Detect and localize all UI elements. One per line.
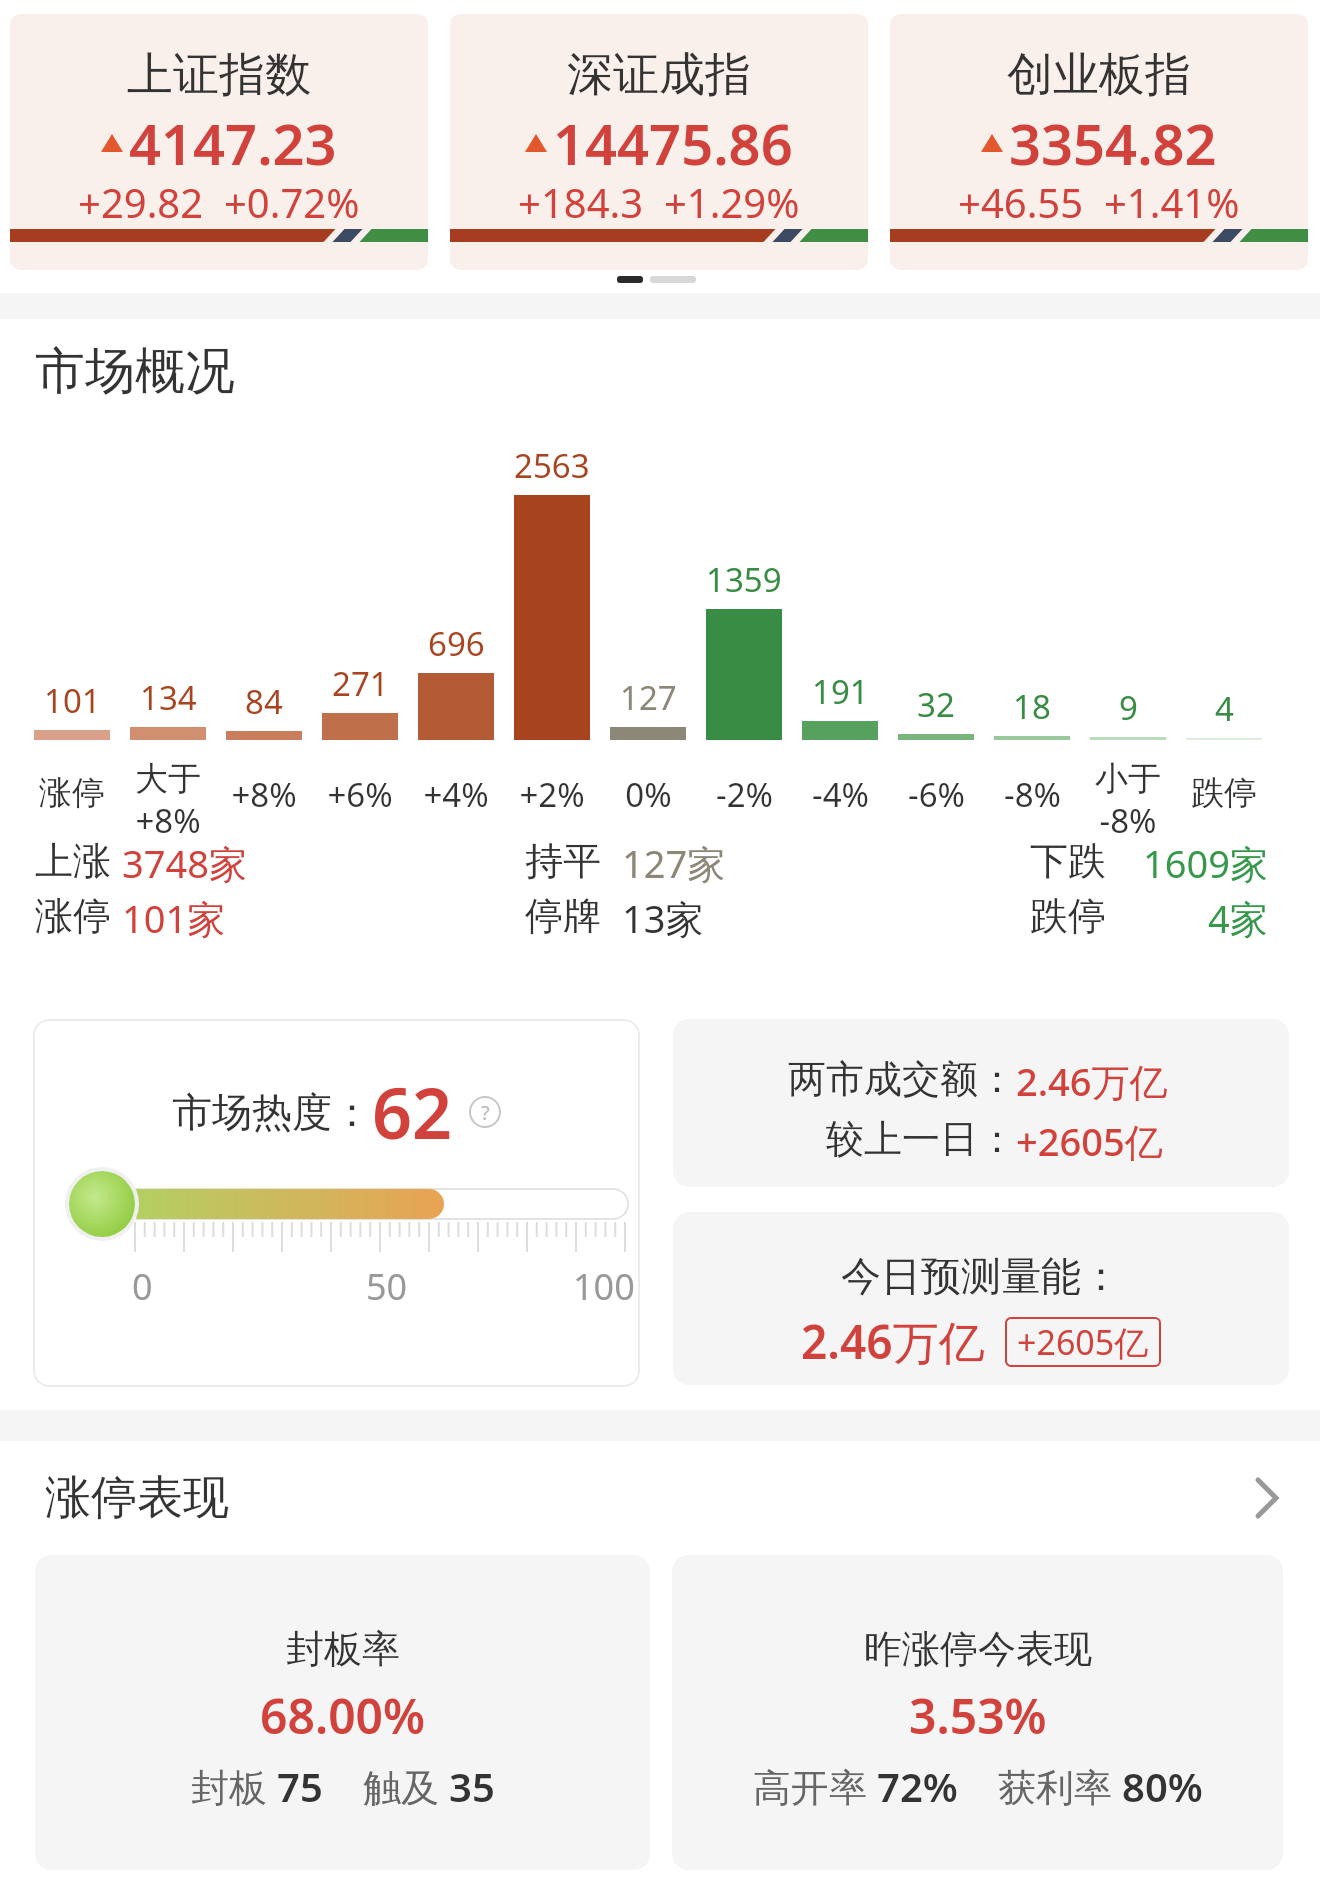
- staticText: 获利率: [998, 1760, 1122, 1812]
- staticText: 3354.82: [1009, 105, 1217, 181]
- staticText: 127家: [622, 837, 726, 889]
- staticText: 较上一日：: [826, 1115, 1016, 1163]
- staticText: 100: [573, 1262, 635, 1311]
- staticText: 封板: [191, 1760, 277, 1812]
- button[interactable]: 昨涨停今表现: [672, 1555, 1283, 1870]
- staticText: 84: [245, 679, 283, 723]
- button[interactable]: 两市成交额：: [673, 1019, 1289, 1187]
- staticText: 101家: [122, 892, 226, 944]
- staticText: 两市成交额：: [788, 1055, 1016, 1103]
- staticText: 68.00%: [260, 1683, 426, 1748]
- staticText: +4%: [423, 772, 489, 817]
- staticText: 涨停: [39, 772, 105, 814]
- staticText: 127: [620, 675, 677, 719]
- button[interactable]: 上证指数: [10, 14, 428, 270]
- staticText: 上证指数: [127, 46, 311, 104]
- staticText: 2563: [514, 443, 590, 487]
- staticText: 32: [917, 682, 955, 726]
- staticText: -2%: [716, 772, 773, 817]
- button[interactable]: 市场热度：: [33, 1019, 640, 1387]
- staticText: +46.55 +1.41%: [958, 175, 1240, 229]
- staticText: 0: [132, 1262, 153, 1311]
- staticText: +2605亿: [1016, 1115, 1163, 1167]
- button[interactable]: 创业板指: [890, 14, 1308, 270]
- staticText: -8%: [1004, 772, 1061, 817]
- button[interactable]: 涨停表现: [0, 1468, 1320, 1528]
- staticText: 3.53%: [909, 1683, 1047, 1748]
- staticText: ?: [481, 1099, 490, 1126]
- staticText: +2605亿: [1017, 1319, 1149, 1365]
- staticText: 市场概况: [35, 340, 235, 403]
- staticText: 1359: [706, 557, 782, 601]
- staticText: 高开率: [753, 1760, 877, 1812]
- staticText: 72%: [877, 1759, 958, 1813]
- staticText: 涨停: [35, 892, 111, 940]
- staticText: +184.3 +1.29%: [518, 175, 800, 229]
- staticText: 50: [366, 1262, 408, 1311]
- staticText: 271: [332, 661, 389, 705]
- staticText: 持平: [525, 837, 601, 885]
- staticText: 停牌: [525, 892, 601, 940]
- staticText: 跌停: [1191, 772, 1257, 814]
- staticText: 触及: [363, 1760, 449, 1812]
- staticText: 1609家: [1143, 837, 1268, 889]
- staticText: 小于 -8%: [1095, 758, 1161, 843]
- staticText: -6%: [908, 772, 965, 817]
- staticText: 市场热度：: [172, 1087, 372, 1137]
- staticText: 创业板指: [1007, 46, 1191, 104]
- staticText: 0%: [625, 772, 672, 817]
- staticText: 下跌: [1030, 837, 1106, 885]
- button[interactable]: 封板率: [35, 1555, 650, 1870]
- staticText: 4家: [1208, 892, 1268, 944]
- staticText: 18: [1013, 684, 1051, 728]
- staticText: 3748家: [122, 837, 247, 889]
- staticText: 101: [44, 678, 101, 722]
- staticText: 35: [449, 1759, 495, 1813]
- staticText: +2%: [519, 772, 585, 817]
- button[interactable]: 深证成指: [450, 14, 868, 270]
- staticText: 昨涨停今表现: [864, 1625, 1092, 1673]
- staticText: 大于 +8%: [135, 758, 201, 843]
- staticText: 4147.23: [129, 105, 337, 181]
- staticText: 696: [428, 621, 485, 665]
- staticText: +29.82 +0.72%: [78, 175, 360, 229]
- button[interactable]: 今日预测量能：: [673, 1212, 1289, 1385]
- staticText: +6%: [327, 772, 393, 817]
- staticText: 今日预测量能：: [841, 1251, 1121, 1301]
- staticText: 跌停: [1030, 892, 1106, 940]
- staticText: 62: [372, 1064, 453, 1159]
- staticText: +8%: [231, 772, 297, 817]
- staticText: 封板率: [286, 1625, 400, 1673]
- staticText: -4%: [812, 772, 869, 817]
- staticText: 134: [140, 675, 197, 719]
- staticText: 2.46万亿: [801, 1310, 985, 1373]
- staticText: 涨停表现: [45, 1469, 229, 1527]
- staticText: 75: [277, 1759, 323, 1813]
- staticText: 2.46万亿: [1016, 1055, 1168, 1107]
- staticText: 9: [1119, 685, 1138, 729]
- staticText: 深证成指: [567, 46, 751, 104]
- staticText: 191: [812, 669, 869, 713]
- staticText: 80%: [1122, 1759, 1203, 1813]
- staticText: 4: [1215, 686, 1234, 730]
- staticText: 14475.86: [553, 105, 793, 181]
- staticText: 上涨: [35, 837, 111, 885]
- staticText: 13家: [622, 892, 704, 944]
